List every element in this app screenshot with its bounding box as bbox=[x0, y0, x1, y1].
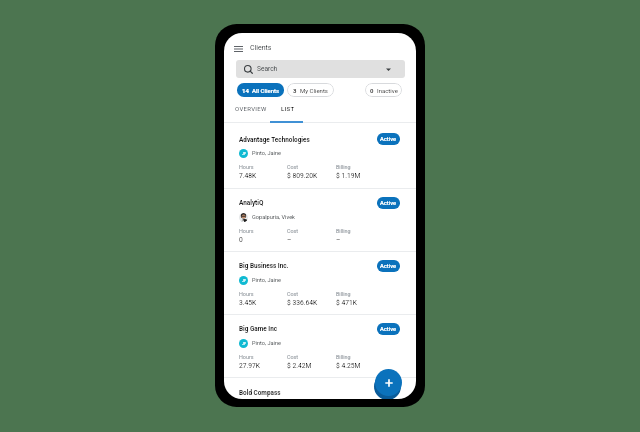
button[interactable]: Search bbox=[236, 60, 405, 78]
staticText: Billing bbox=[336, 291, 351, 297]
staticText: Active bbox=[380, 263, 397, 270]
staticText: Cost bbox=[287, 354, 299, 360]
staticText: Hours bbox=[239, 164, 254, 170]
staticText: $ 809.20K bbox=[287, 172, 318, 180]
staticText: Pinto, Jaine bbox=[252, 340, 281, 347]
staticText: Gopalpuria, Vivek bbox=[252, 214, 295, 221]
staticText: Cost bbox=[287, 164, 299, 170]
staticText: Bold Compass bbox=[239, 389, 281, 397]
staticText: JP bbox=[242, 342, 246, 346]
staticText: Hours bbox=[239, 291, 254, 297]
button[interactable]: Active bbox=[377, 133, 400, 145]
staticText: Hours bbox=[239, 228, 254, 234]
button[interactable]: Bold Compass bbox=[224, 378, 416, 399]
staticText: Cost bbox=[287, 291, 299, 297]
staticText: JP bbox=[242, 152, 246, 156]
staticText: OVERVIEW bbox=[235, 105, 267, 112]
button[interactable]: Big Game Inc bbox=[224, 315, 416, 378]
staticText: Big Business Inc. bbox=[239, 262, 289, 270]
staticText: AnalytiQ bbox=[239, 199, 264, 207]
staticText: $ 1.19M bbox=[336, 172, 361, 180]
button[interactable]: Advantage Technologies bbox=[224, 122, 416, 189]
button[interactable]: 0 bbox=[365, 83, 402, 97]
staticText: – bbox=[287, 236, 292, 244]
staticText: Pinto, Jaine bbox=[252, 150, 281, 157]
staticText: $ 336.64K bbox=[287, 299, 318, 307]
staticText: JP bbox=[242, 279, 246, 283]
button[interactable]: Add client bbox=[375, 369, 402, 396]
button[interactable]: 14 bbox=[237, 83, 284, 97]
staticText: 0 bbox=[370, 87, 374, 94]
staticText: Active bbox=[380, 200, 397, 207]
staticText: Active bbox=[380, 136, 397, 143]
button[interactable]: Active bbox=[377, 260, 400, 272]
staticText: 3.45K bbox=[239, 299, 257, 307]
staticText: Clients bbox=[250, 44, 272, 52]
staticText: My Clients bbox=[300, 87, 328, 94]
button[interactable]: AnalytiQ bbox=[224, 189, 416, 252]
button[interactable]: LIST bbox=[272, 101, 304, 116]
staticText: Hours bbox=[239, 354, 254, 360]
staticText: Inactive bbox=[377, 87, 398, 94]
button[interactable]: Active bbox=[377, 197, 400, 209]
staticText: Billing bbox=[336, 164, 351, 170]
staticText: Search bbox=[257, 65, 278, 73]
staticText: Billing bbox=[336, 354, 351, 360]
button[interactable]: Menu bbox=[232, 42, 245, 55]
staticText: Cost bbox=[287, 228, 299, 234]
button[interactable]: 3 bbox=[287, 83, 334, 97]
staticText: Active bbox=[380, 326, 397, 333]
staticText: 7.48K bbox=[239, 172, 257, 180]
button[interactable]: Active bbox=[377, 323, 400, 335]
button[interactable]: Big Business Inc. bbox=[224, 252, 416, 315]
staticText: Billing bbox=[336, 228, 351, 234]
staticText: 27.97K bbox=[239, 362, 260, 370]
staticText: All Clients bbox=[252, 87, 280, 94]
staticText: 14 bbox=[242, 87, 249, 94]
staticText: $ 2.42M bbox=[287, 362, 312, 370]
staticText: LIST bbox=[281, 105, 295, 112]
staticText: 3 bbox=[293, 87, 297, 94]
staticText: Big Game Inc bbox=[239, 325, 278, 333]
staticText: $ 4.25M bbox=[336, 362, 361, 370]
staticText: – bbox=[336, 236, 341, 244]
staticText: Advantage Technologies bbox=[239, 136, 310, 144]
staticText: 0 bbox=[239, 236, 243, 244]
staticText: $ 471K bbox=[336, 299, 357, 307]
button[interactable]: OVERVIEW bbox=[230, 101, 272, 116]
staticText: Pinto, Jaine bbox=[252, 277, 281, 284]
